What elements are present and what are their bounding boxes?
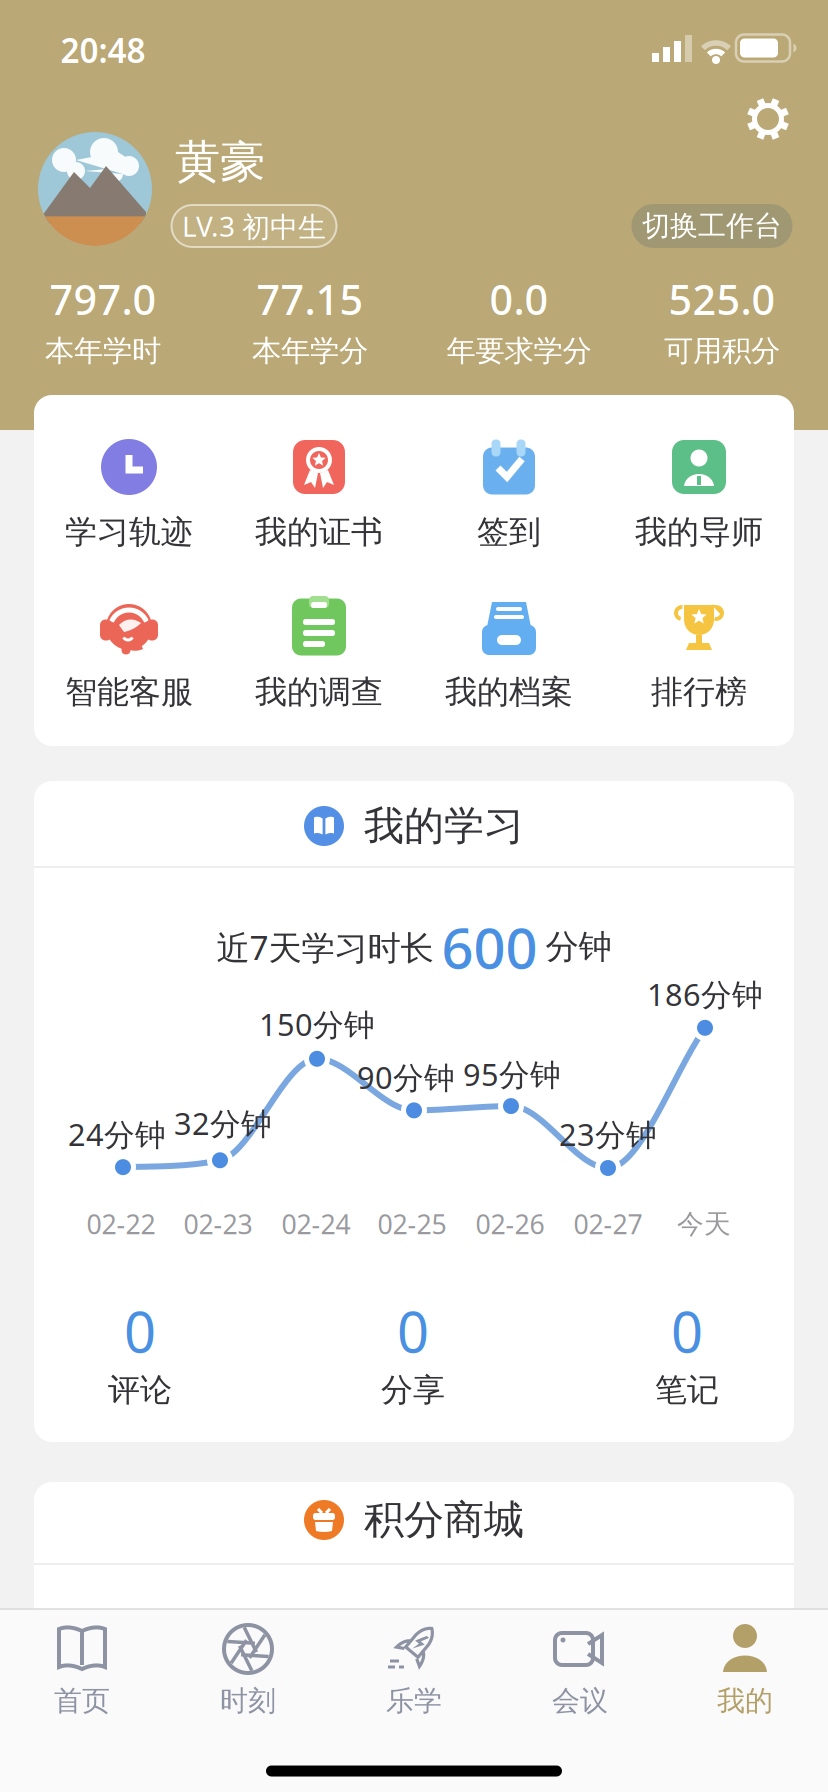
staticText: 时刻 (220, 1684, 276, 1718)
staticText: 智能客服 (65, 672, 193, 712)
staticText: 02-27 (573, 1206, 642, 1242)
staticText: 我的学习 (364, 801, 524, 850)
staticText: 0 (671, 1294, 703, 1368)
staticText: 02-25 (377, 1206, 446, 1242)
button[interactable]: 切换工作台 (631, 204, 792, 248)
staticText: 可用积分 (664, 333, 780, 369)
staticText: 年要求学分 (446, 333, 591, 369)
staticText: 分钟 (545, 926, 611, 967)
staticText: 32分钟 (174, 1103, 272, 1143)
staticText: 02-22 (86, 1206, 155, 1242)
staticText: 黄豪 (175, 134, 265, 190)
staticText: 02-26 (475, 1206, 544, 1242)
staticText: 我的证书 (255, 512, 383, 552)
staticText: 今天 (677, 1208, 731, 1240)
staticText: 150分钟 (259, 1004, 375, 1044)
button[interactable]: 签到 (416, 431, 602, 583)
staticText: 近7天学习时长 (216, 925, 433, 969)
staticText: 77.15 (256, 272, 363, 326)
staticText: 0 (397, 1294, 429, 1368)
staticText: LV.3 初中生 (182, 207, 326, 245)
staticText: 会议 (552, 1684, 608, 1718)
button[interactable]: Settings (740, 91, 796, 147)
button[interactable]: 我的学习 (304, 801, 524, 850)
staticText: 学习轨迹 (65, 512, 193, 552)
staticText: 0 (124, 1294, 156, 1368)
button[interactable]: 我的调查 (226, 591, 412, 743)
staticText: 分享 (381, 1370, 445, 1410)
staticText: 评论 (108, 1370, 172, 1410)
button[interactable]: 首页 (0, 1609, 164, 1735)
button[interactable]: 学习轨迹 (36, 431, 222, 583)
staticText: 我的档案 (445, 672, 573, 712)
staticText: 23分钟 (559, 1114, 657, 1154)
staticText: 切换工作台 (642, 209, 782, 243)
button[interactable]: 我的 (663, 1609, 827, 1735)
staticText: 排行榜 (651, 672, 747, 712)
staticText: 我的 (717, 1684, 773, 1718)
button[interactable]: 排行榜 (606, 591, 792, 743)
staticText: 797.0 (49, 272, 156, 326)
button[interactable]: LV.3 初中生 (171, 205, 336, 247)
staticText: 90分钟 (357, 1057, 455, 1097)
staticText: 笔记 (655, 1370, 719, 1410)
button[interactable]: 乐学 (332, 1609, 496, 1735)
staticText: 积分商城 (364, 1495, 524, 1544)
staticText: 20:48 (60, 28, 145, 72)
staticText: 本年学时 (45, 333, 161, 369)
button[interactable]: 我的证书 (226, 431, 412, 583)
staticText: 95分钟 (463, 1054, 561, 1094)
staticText: 我的导师 (635, 512, 763, 552)
button[interactable]: 会议 (498, 1609, 662, 1735)
staticText: 乐学 (386, 1684, 442, 1718)
staticText: 02-23 (183, 1206, 252, 1242)
button[interactable]: 时刻 (166, 1609, 330, 1735)
staticText: 186分钟 (647, 974, 763, 1014)
button[interactable]: 我的档案 (416, 591, 602, 743)
staticText: 525.0 (668, 272, 775, 326)
staticText: 600 (441, 910, 537, 984)
staticText: 0.0 (489, 272, 548, 326)
staticText: 首页 (54, 1684, 110, 1718)
button[interactable]: 我的导师 (606, 431, 792, 583)
staticText: 签到 (477, 512, 541, 552)
button[interactable]: 智能客服 (36, 591, 222, 743)
staticText: 24分钟 (68, 1114, 166, 1154)
staticText: 本年学分 (252, 333, 368, 369)
staticText: 我的调查 (255, 672, 383, 712)
button[interactable]: 积分商城 (304, 1495, 524, 1544)
staticText: 02-24 (281, 1206, 350, 1242)
